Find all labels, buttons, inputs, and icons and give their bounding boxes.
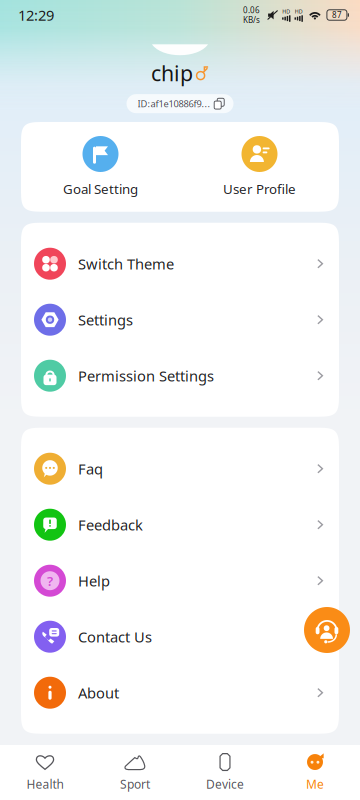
staticText: 12:29 xyxy=(18,5,54,25)
button[interactable]: Sport xyxy=(90,745,180,800)
staticText: Settings xyxy=(78,310,133,329)
staticText: About xyxy=(78,683,119,702)
staticText: Health xyxy=(26,776,63,792)
button[interactable]: User Profile xyxy=(180,136,339,198)
button[interactable]: Contact Us xyxy=(21,609,339,665)
staticText: Device xyxy=(206,776,244,792)
staticText: User Profile xyxy=(223,180,296,198)
button[interactable]: ID:af1e10886f9... xyxy=(126,94,233,113)
staticText: Help xyxy=(78,571,110,590)
staticText: Contact Us xyxy=(78,627,152,646)
button[interactable]: Health xyxy=(0,745,90,800)
staticText: ID:af1e10886f9... xyxy=(137,97,210,110)
staticText: chip xyxy=(151,59,193,87)
staticText: Switch Theme xyxy=(78,254,174,273)
staticText: Permission Settings xyxy=(78,366,214,385)
button[interactable]: Me xyxy=(270,745,360,800)
button[interactable]: Feedback xyxy=(21,497,339,553)
button[interactable]: Permission Settings xyxy=(21,348,339,404)
button[interactable]: Switch Theme xyxy=(21,236,339,292)
staticText: HD xyxy=(295,8,303,15)
staticText: Sport xyxy=(120,776,150,792)
staticText: Goal Setting xyxy=(63,180,138,198)
button[interactable]: Customer Service xyxy=(304,607,350,653)
button[interactable]: ? xyxy=(21,553,339,609)
staticText: ? xyxy=(47,572,53,590)
staticText: KB/s xyxy=(243,14,260,25)
button[interactable]: Device xyxy=(180,745,270,800)
button[interactable]: Goal Setting xyxy=(21,136,180,198)
staticText: Faq xyxy=(78,459,103,478)
staticText: HD xyxy=(282,8,290,15)
staticText: 0.06 xyxy=(243,5,260,15)
staticText: Feedback xyxy=(78,515,143,534)
staticText: 87 xyxy=(332,10,342,20)
button[interactable]: About xyxy=(21,665,339,721)
staticText: Me xyxy=(306,776,324,792)
button[interactable]: Faq xyxy=(21,441,339,497)
button[interactable]: Settings xyxy=(21,292,339,348)
